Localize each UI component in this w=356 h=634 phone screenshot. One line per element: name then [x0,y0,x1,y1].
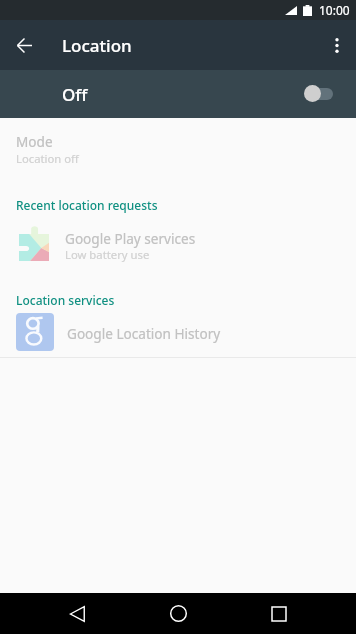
staticText: Low battery use [65,247,150,262]
staticText: Location services [16,292,115,308]
button[interactable]: Off [0,70,356,118]
staticText: Google Play services [65,229,196,248]
staticText: Off [62,83,88,106]
button[interactable]: Navigate up [4,25,44,65]
button[interactable]: Google Play services [0,216,356,268]
staticText: Location off [16,151,79,166]
staticText: 10:00 [319,2,350,18]
staticText: Mode [16,132,53,151]
button[interactable]: Mode [0,124,356,170]
staticText: Location [62,34,132,57]
button[interactable]: Home [154,593,202,634]
button[interactable]: Back [53,593,101,634]
button[interactable]: Recent apps [255,593,303,634]
button[interactable]: More options [316,25,356,65]
staticText: Google Location History [67,324,221,343]
button[interactable]: Google Location History [0,311,356,357]
staticText: Recent location requests [16,197,158,213]
